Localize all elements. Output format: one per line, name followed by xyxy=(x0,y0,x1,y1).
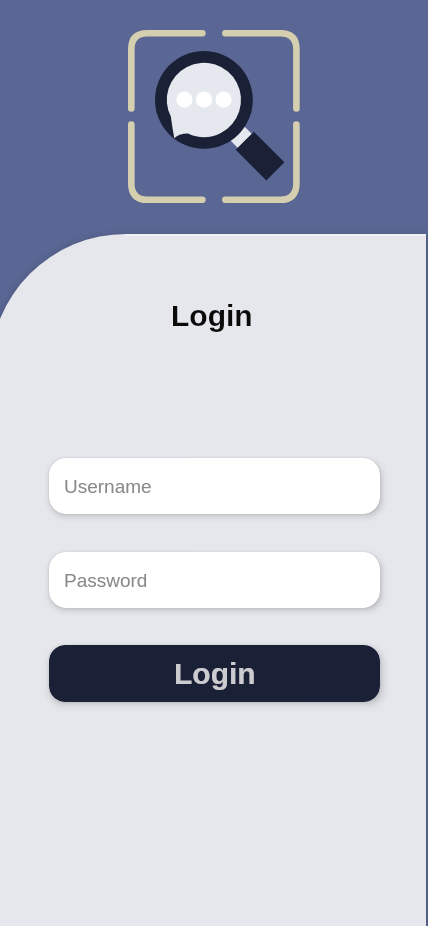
staticText: Username xyxy=(64,476,152,497)
button[interactable]: Login xyxy=(49,645,380,702)
staticText: Password xyxy=(64,570,148,591)
button[interactable]: Username xyxy=(49,458,380,514)
staticText: Login xyxy=(171,299,253,333)
button[interactable]: Password xyxy=(49,552,380,608)
staticText: Login xyxy=(174,657,256,691)
